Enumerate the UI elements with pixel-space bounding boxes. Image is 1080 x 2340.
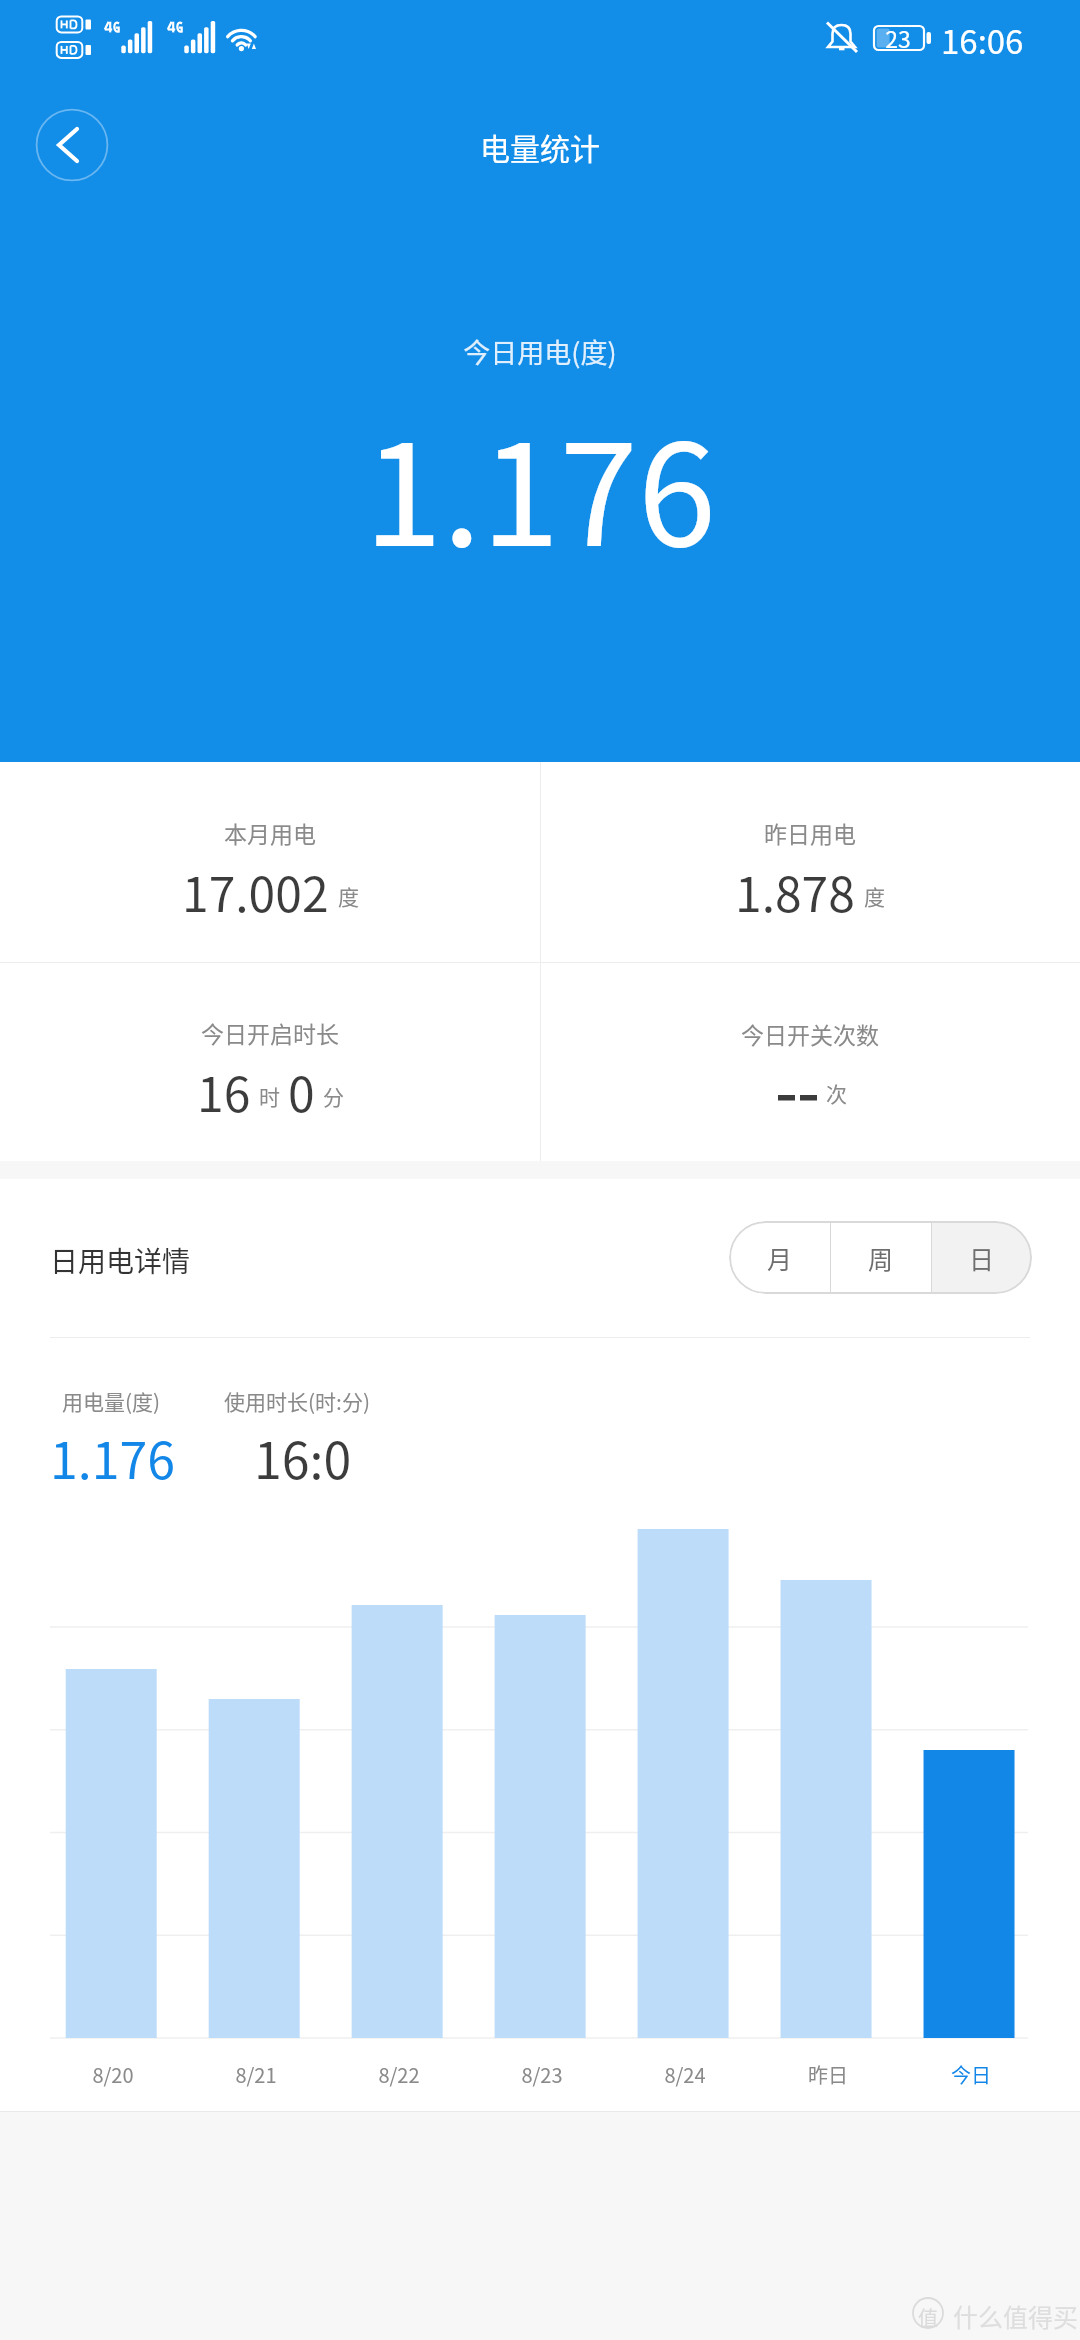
staticText: 度 <box>338 881 359 911</box>
button[interactable]: 8/23 <box>492 1625 592 2092</box>
staticText: 周 <box>868 1240 894 1276</box>
button[interactable]: 8/24 <box>635 1625 735 2092</box>
staticText: 分 <box>323 1081 344 1111</box>
staticText: 次 <box>826 1078 847 1108</box>
staticText: 16 <box>197 1056 251 1126</box>
button[interactable]: 本月用电 <box>0 762 540 962</box>
button[interactable]: 周 <box>831 1221 931 1294</box>
staticText: 8/20 <box>63 2060 163 2089</box>
button[interactable]: 8/22 <box>349 1625 449 2092</box>
staticText: 8/24 <box>635 2060 735 2089</box>
staticText: 日 <box>969 1240 995 1276</box>
staticText: 0 <box>288 1056 315 1126</box>
staticText: 17.002 <box>182 856 329 926</box>
button[interactable]: Back <box>36 109 108 181</box>
staticText: 用电量(度) <box>62 1386 161 1416</box>
staticText: 16:0 <box>254 1421 352 1493</box>
staticText: 今日用电(度) <box>0 332 1080 371</box>
button[interactable]: 今日开启时长 <box>0 963 540 1161</box>
staticText: 昨日用电 <box>764 816 856 849</box>
button[interactable]: 8/21 <box>206 1625 306 2092</box>
button[interactable]: 日 <box>932 1221 1032 1294</box>
staticText: 月 <box>767 1240 793 1276</box>
button[interactable]: 昨日 <box>778 1625 878 2092</box>
staticText: 度 <box>864 881 885 911</box>
staticText: 1.176 <box>50 1421 175 1493</box>
staticText: 什么值得买 <box>953 2298 1079 2334</box>
button[interactable]: 今日 <box>921 1625 1021 2092</box>
staticText: 16:06 <box>941 16 1024 64</box>
staticText: 本月用电 <box>224 816 316 849</box>
button[interactable]: 月 <box>729 1221 830 1294</box>
staticText: 值 <box>918 2303 938 2332</box>
button[interactable]: 昨日用电 <box>540 762 1080 962</box>
staticText: 8/21 <box>206 2060 306 2089</box>
staticText: 8/22 <box>349 2060 449 2089</box>
staticText: 使用时长(时:分) <box>224 1386 371 1416</box>
staticText: 日用电详情 <box>50 1240 191 1281</box>
button[interactable]: 8/20 <box>63 1625 163 2092</box>
staticText: 昨日 <box>778 2060 878 2089</box>
button[interactable]: 今日开关次数 <box>540 963 1080 1161</box>
staticText: 23 <box>882 21 914 54</box>
staticText: 今日 <box>921 2060 1021 2089</box>
staticText: 今日开关次数 <box>741 1017 879 1050</box>
staticText: 8/23 <box>492 2060 592 2089</box>
staticText: 电量统计 <box>0 125 1080 168</box>
staticText: 1.878 <box>735 856 855 926</box>
staticText: 今日开启时长 <box>201 1016 339 1049</box>
staticText: 时 <box>259 1081 280 1111</box>
staticText: 1.176 <box>0 382 1080 586</box>
